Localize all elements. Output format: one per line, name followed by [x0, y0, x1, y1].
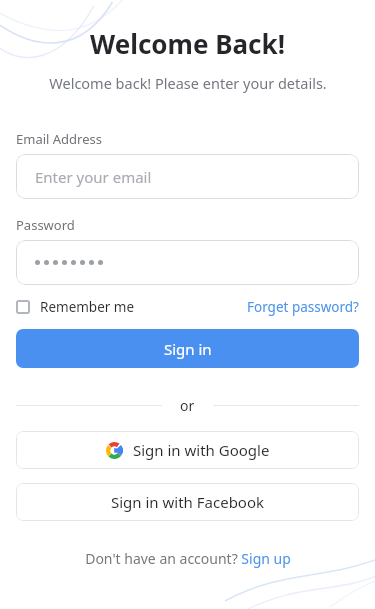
staticText: Remember me	[40, 298, 135, 316]
staticText: Forget password?	[247, 298, 359, 316]
button[interactable]: Don't have an account? Sign up	[85, 549, 291, 568]
staticText: Welcome back! Please enter your details.	[49, 73, 327, 93]
staticText: Welcome Back!	[90, 26, 285, 61]
button[interactable]: Remember me	[16, 298, 139, 316]
button[interactable]	[16, 240, 359, 285]
staticText: or	[180, 396, 195, 414]
staticText: Sign in with Facebook	[111, 492, 265, 512]
staticText: Don't have an account? Sign up	[85, 549, 291, 568]
staticText: Password	[16, 216, 75, 234]
button[interactable]: Enter your email	[16, 154, 359, 199]
button[interactable]: Sign in	[16, 329, 359, 368]
staticText: Enter your email	[35, 167, 152, 187]
staticText: Sign in with Google	[133, 440, 270, 460]
staticText: Sign in	[164, 339, 212, 359]
button[interactable]: Sign in with Facebook	[16, 483, 359, 521]
button[interactable]: Forget password?	[247, 298, 359, 316]
button[interactable]: Sign in with Google	[16, 431, 359, 469]
staticText: Email Address	[16, 130, 102, 148]
